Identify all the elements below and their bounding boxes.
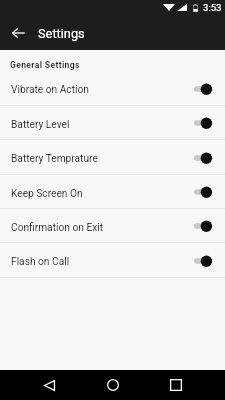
button[interactable]: Keep Screen On <box>0 175 225 209</box>
staticText: Keep Screen On <box>11 188 194 200</box>
button[interactable]: Back <box>18 370 81 400</box>
button[interactable]: Back <box>0 15 36 50</box>
button[interactable]: Recents <box>144 370 207 400</box>
staticText: Confirmation on Exit <box>11 222 194 234</box>
staticText: Battery Temprature <box>11 153 194 165</box>
staticText: Vibrate on Action <box>11 84 194 96</box>
staticText: Flash on Call <box>11 256 194 268</box>
staticText: 3:53 <box>203 2 222 13</box>
staticText: General Settings <box>10 60 80 70</box>
button[interactable]: Home <box>81 370 144 400</box>
staticText: Settings <box>38 26 85 41</box>
button[interactable]: Confirmation on Exit <box>0 209 225 243</box>
button[interactable]: Battery Temprature <box>0 140 225 175</box>
button[interactable]: Flash on Call <box>0 243 225 278</box>
button[interactable]: Vibrate on Action <box>0 71 225 106</box>
staticText: Battery Level <box>11 119 194 131</box>
button[interactable]: Battery Level <box>0 106 225 140</box>
